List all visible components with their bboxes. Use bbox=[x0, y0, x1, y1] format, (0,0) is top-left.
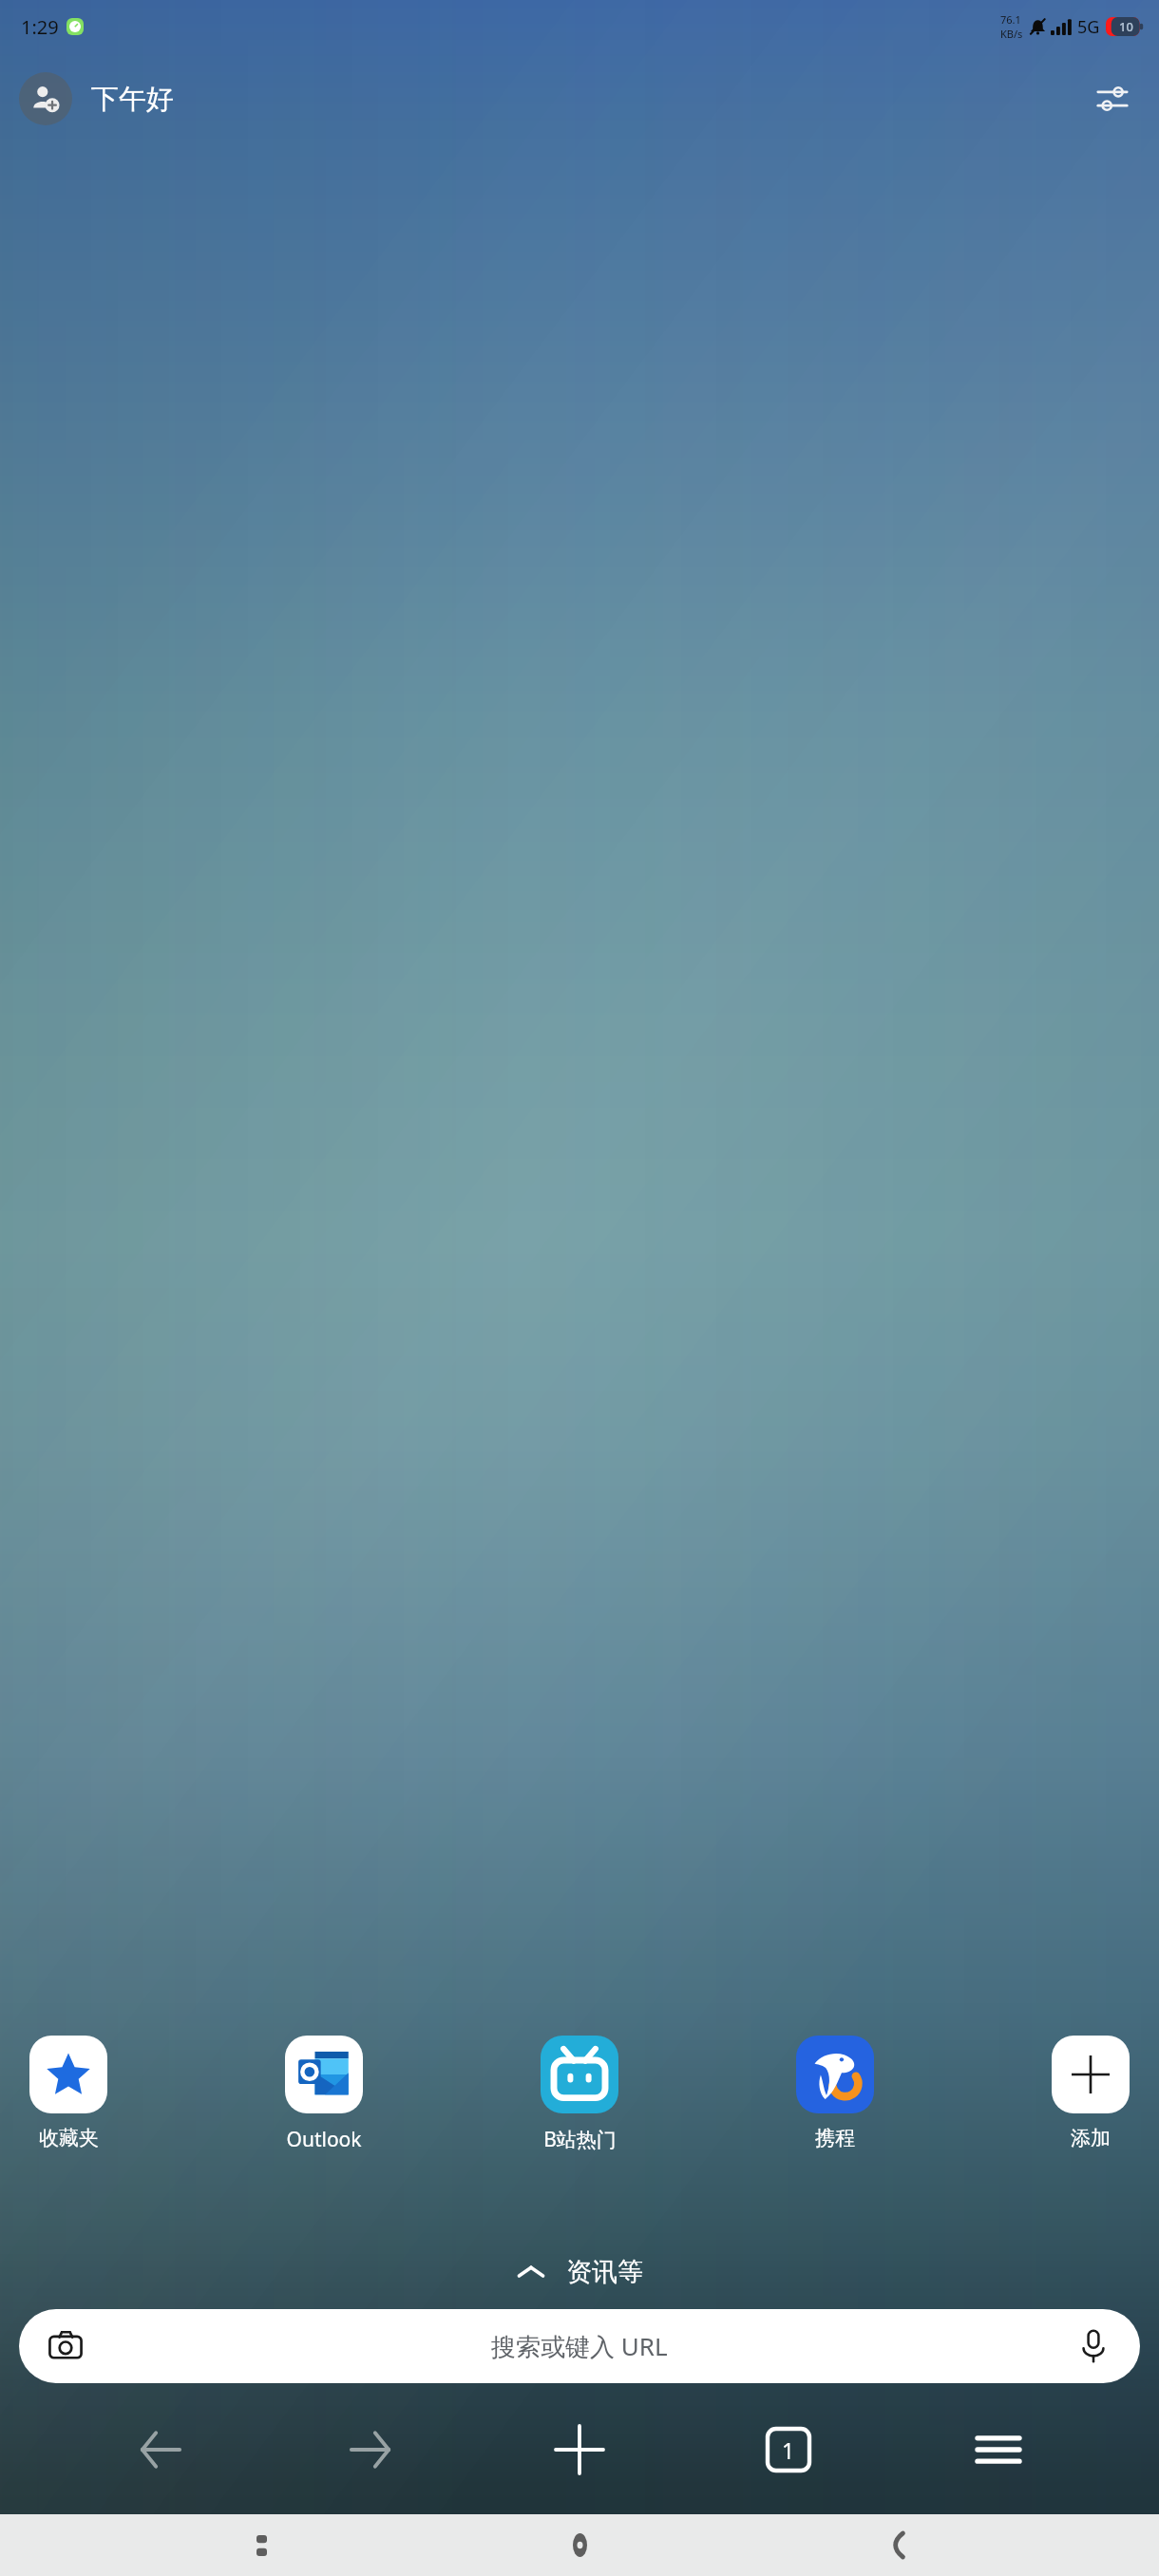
button[interactable]: Menu bbox=[942, 2404, 1054, 2495]
button[interactable]: Search by image bbox=[19, 2309, 1140, 2383]
staticText: 收藏夹 bbox=[39, 2126, 99, 2150]
button[interactable]: Tabs, 1 open bbox=[732, 2404, 845, 2495]
button[interactable]: Settings bbox=[1085, 71, 1140, 126]
button[interactable]: Search by image bbox=[42, 2322, 89, 2370]
button[interactable]: Back bbox=[104, 2404, 217, 2495]
button[interactable]: Outlook bbox=[275, 2036, 373, 2153]
staticText: 1 bbox=[782, 2435, 795, 2465]
button[interactable]: New tab bbox=[523, 2404, 636, 2495]
staticText: 下午好 bbox=[91, 82, 174, 117]
button[interactable]: 携程 bbox=[786, 2036, 884, 2150]
staticText: 5G bbox=[1077, 15, 1100, 39]
staticText: 携程 bbox=[815, 2126, 855, 2150]
staticText: B站热门 bbox=[543, 2126, 617, 2153]
button[interactable]: B站热门 bbox=[530, 2036, 629, 2153]
staticText: 资讯等 bbox=[566, 2256, 643, 2288]
staticText: 10 bbox=[1119, 18, 1133, 35]
staticText: 添加 bbox=[1071, 2126, 1111, 2150]
staticText: Outlook bbox=[286, 2126, 362, 2153]
staticText: 1:29 bbox=[21, 14, 59, 40]
button[interactable]: 资讯等 bbox=[0, 2256, 1159, 2288]
staticText: KB/s bbox=[1000, 27, 1023, 41]
button[interactable]: 收藏夹 bbox=[19, 2036, 118, 2150]
staticText: 搜索或键入 URL bbox=[491, 2329, 668, 2363]
button[interactable]: Recents bbox=[204, 2514, 318, 2576]
button[interactable]: Home bbox=[522, 2514, 636, 2576]
button[interactable]: Voice search bbox=[1070, 2322, 1117, 2370]
button[interactable]: Account bbox=[19, 72, 72, 125]
button[interactable]: Back bbox=[841, 2514, 955, 2576]
button[interactable]: 添加 bbox=[1041, 2036, 1140, 2150]
button[interactable]: Forward bbox=[314, 2404, 427, 2495]
staticText: 76.1 bbox=[1000, 12, 1021, 27]
